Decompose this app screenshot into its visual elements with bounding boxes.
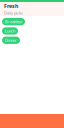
staticText: Lunch (5, 28, 15, 34)
staticText: Dinner (5, 38, 17, 43)
staticText: Breakfast (5, 19, 22, 24)
staticText: Fresh (4, 2, 18, 9)
staticText: Daily picks (4, 10, 23, 16)
